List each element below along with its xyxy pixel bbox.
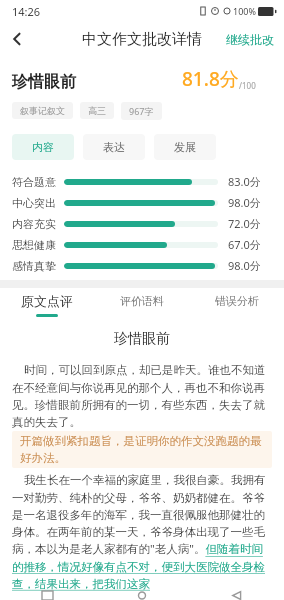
staticText: 81.8分 xyxy=(182,66,239,92)
staticText: 叙事记叙文 xyxy=(20,105,65,116)
button[interactable]: 发展 xyxy=(154,134,216,160)
staticText: 中心突出 xyxy=(12,196,56,210)
button[interactable]: Back xyxy=(221,591,253,600)
button[interactable]: 原文点评 xyxy=(0,288,94,322)
button[interactable]: Home xyxy=(126,591,158,600)
staticText: 72.0分 xyxy=(228,216,261,231)
staticText: 14:26 xyxy=(12,4,41,19)
staticText: 100% xyxy=(233,5,256,17)
staticText: 符合题意 xyxy=(12,175,56,189)
staticText: 评价语料 xyxy=(120,294,164,308)
staticText: 发展 xyxy=(174,140,196,154)
staticText: 高三 xyxy=(88,105,106,116)
staticText: 错误分析 xyxy=(215,294,259,308)
staticText: 时间，可以回到原点，却已是昨天。谁也不知道在不经意间与你说再见的那个人，再也不和… xyxy=(12,362,272,429)
staticText: 表达 xyxy=(103,140,125,154)
staticText: 98.0分 xyxy=(228,195,261,210)
button[interactable]: 高三 xyxy=(80,102,114,119)
button[interactable]: Recents xyxy=(31,591,63,600)
staticText: 98.0分 xyxy=(228,258,261,273)
staticText: 967字 xyxy=(129,105,154,117)
staticText: 感情真挚 xyxy=(12,259,56,273)
button[interactable]: 内容 xyxy=(12,134,74,160)
staticText: 内容 xyxy=(32,140,54,154)
button[interactable]: 967字 xyxy=(121,102,162,120)
button[interactable]: 继续批改 xyxy=(222,28,278,51)
staticText: 原文点评 xyxy=(21,293,73,309)
staticText: 67.0分 xyxy=(228,237,261,252)
staticText: 中文作文批改详情 xyxy=(82,30,202,49)
button[interactable]: 叙事记叙文 xyxy=(12,102,73,119)
button[interactable]: Back xyxy=(0,22,34,56)
button[interactable]: 表达 xyxy=(83,134,145,160)
button[interactable]: 评价语料 xyxy=(94,288,189,322)
staticText: 我生长在一个幸福的家庭里，我很自豪。我拥有一对勤劳、纯朴的父母，爷爷、奶奶都健在… xyxy=(12,472,272,591)
button[interactable]: 错误分析 xyxy=(189,288,284,322)
staticText: 内容充实 xyxy=(12,217,56,231)
staticText: /100 xyxy=(239,80,256,91)
staticText: 开篇做到紧扣题旨，是证明你的作文没跑题的最好办法。 xyxy=(20,434,264,465)
staticText: 83.0分 xyxy=(228,174,261,189)
staticText: 珍惜眼前 xyxy=(12,330,272,348)
staticText: 思想健康 xyxy=(12,238,56,252)
staticText: 珍惜眼前 xyxy=(12,72,76,92)
staticText: 继续批改 xyxy=(226,32,274,47)
